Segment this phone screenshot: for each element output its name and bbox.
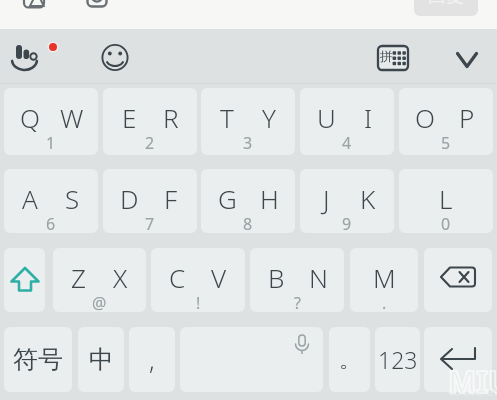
staticText: D xyxy=(120,181,139,216)
staticText: MIUI xyxy=(448,361,497,400)
button[interactable]: Hide keyboard xyxy=(447,40,487,80)
button[interactable]: 回复 xyxy=(414,0,478,16)
button[interactable]: G xyxy=(201,169,295,233)
button[interactable]: 符号 xyxy=(4,327,72,392)
staticText: F xyxy=(164,181,178,216)
staticText: Y xyxy=(262,100,276,135)
staticText: 拼 xyxy=(380,48,393,64)
staticText: O xyxy=(415,100,435,135)
button[interactable]: U xyxy=(300,88,394,155)
staticText: 中 xyxy=(89,344,114,375)
button[interactable]: J xyxy=(300,169,394,233)
button[interactable]: L xyxy=(399,169,493,233)
button[interactable]: Emoji xyxy=(95,36,135,76)
staticText: 123 xyxy=(378,344,418,375)
staticText: 。 xyxy=(339,346,361,374)
staticText: X xyxy=(113,260,128,295)
staticText: T xyxy=(220,100,234,135)
staticText: P xyxy=(459,100,475,135)
button[interactable]: Switch keyboard layout xyxy=(372,36,414,78)
staticText: 2 xyxy=(145,132,155,154)
staticText: 符号 xyxy=(13,344,63,375)
staticText: N xyxy=(309,260,328,295)
button[interactable]: Q xyxy=(4,88,98,155)
staticText: J xyxy=(323,181,330,216)
staticText: I xyxy=(364,100,373,135)
button[interactable]: M xyxy=(350,248,418,312)
staticText: 回复 xyxy=(428,0,464,8)
staticText: E xyxy=(122,100,137,135)
staticText: . xyxy=(382,292,387,312)
staticText: L xyxy=(439,181,453,216)
button[interactable]: C xyxy=(151,248,245,312)
button[interactable]: 中 xyxy=(78,327,124,392)
staticText: COMMUNITY xyxy=(449,387,497,398)
staticText: 4 xyxy=(342,132,352,154)
staticText: H xyxy=(260,181,279,216)
staticText: 0 xyxy=(441,213,451,233)
button[interactable]: B xyxy=(250,248,344,312)
button[interactable]: D xyxy=(103,169,197,233)
staticText: Z xyxy=(71,260,86,295)
button[interactable]: Input method menu xyxy=(0,34,40,74)
staticText: 8 xyxy=(243,213,253,233)
button[interactable]: Shift xyxy=(4,248,45,312)
button[interactable]: 123 xyxy=(375,327,420,392)
button[interactable]: Backspace xyxy=(424,248,492,312)
button[interactable]: Space xyxy=(180,327,323,392)
staticText: , xyxy=(149,343,155,377)
staticText: 9 xyxy=(342,213,352,233)
staticText: 7 xyxy=(145,213,155,233)
button[interactable]: A xyxy=(4,169,98,233)
button[interactable]: Camera xyxy=(77,0,117,11)
button[interactable]: 。 xyxy=(329,327,370,392)
button[interactable]: Gallery xyxy=(14,0,54,12)
button[interactable]: O xyxy=(399,88,493,155)
staticText: 5 xyxy=(441,132,451,154)
staticText: U xyxy=(317,100,336,135)
button[interactable]: T xyxy=(201,88,295,155)
staticText: ? xyxy=(294,292,301,312)
button[interactable]: , xyxy=(129,327,175,392)
staticText: G xyxy=(218,181,237,216)
staticText: B xyxy=(268,260,285,295)
staticText: 3 xyxy=(243,132,253,154)
button[interactable]: Z xyxy=(53,248,146,312)
staticText: K xyxy=(360,181,376,216)
staticText: W xyxy=(60,100,84,135)
staticText: V xyxy=(211,260,227,295)
staticText: C xyxy=(169,260,186,295)
staticText: R xyxy=(163,100,179,135)
staticText: M xyxy=(373,260,396,295)
staticText: A xyxy=(22,181,38,216)
staticText: @ xyxy=(92,292,107,312)
staticText: 6 xyxy=(46,213,56,233)
button[interactable]: E xyxy=(103,88,197,155)
staticText: ! xyxy=(196,292,201,312)
staticText: S xyxy=(65,181,80,216)
staticText: Q xyxy=(20,100,40,135)
staticText: 1 xyxy=(46,132,56,154)
button[interactable]: Enter xyxy=(424,327,492,392)
